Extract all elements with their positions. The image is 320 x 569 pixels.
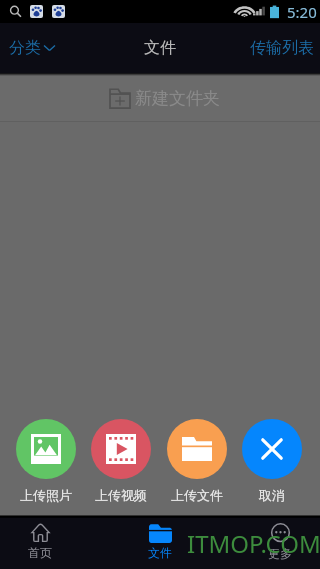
staticText: 上传照片 <box>20 487 72 503</box>
button[interactable]: 文件 <box>120 518 200 569</box>
staticText: 首页 <box>28 545 52 560</box>
staticText: 上传视频 <box>95 487 147 503</box>
button[interactable]: 上传文件 <box>167 419 227 503</box>
button[interactable]: 分类 <box>0 23 67 73</box>
staticText: 取消 <box>259 487 285 503</box>
button[interactable]: 首页 <box>0 518 80 569</box>
staticText: 分类 <box>9 38 41 58</box>
button[interactable]: 更多 <box>240 518 320 569</box>
button[interactable]: 上传照片 <box>16 419 76 503</box>
staticText: 新建文件夹 <box>135 88 220 109</box>
button[interactable]: 上传视频 <box>91 419 151 503</box>
staticText: 文件 <box>144 38 176 58</box>
button[interactable]: 取消 <box>242 419 302 503</box>
staticText: 传输列表 <box>250 38 314 58</box>
staticText: ITMOP.COM <box>187 527 320 560</box>
button[interactable]: 传输列表 <box>244 23 320 73</box>
button[interactable]: 新建文件夹 <box>0 76 320 121</box>
staticText: 更多 <box>268 546 292 561</box>
staticText: 文件 <box>148 545 172 560</box>
staticText: 上传文件 <box>171 487 223 503</box>
staticText: 5:20 <box>287 2 317 22</box>
